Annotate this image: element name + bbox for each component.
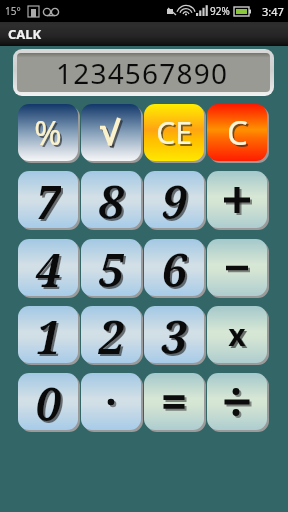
staticText: 9 [161, 171, 187, 228]
button[interactable] [207, 171, 267, 228]
staticText: 6 [161, 239, 187, 296]
staticText: 3 [161, 306, 187, 363]
button[interactable] [207, 373, 267, 430]
staticText: 15° [5, 4, 21, 18]
staticText: 4 [35, 239, 61, 296]
staticText: 0 [35, 373, 61, 430]
button[interactable]: 8 [81, 171, 141, 228]
staticText: 8 [100, 173, 126, 228]
staticText: 0 [37, 375, 63, 430]
staticText: 3:47 [262, 4, 284, 19]
staticText: 6 [163, 241, 189, 296]
staticText: C [229, 112, 250, 157]
button[interactable]: 9 [144, 171, 204, 228]
button[interactable]: 3 [144, 306, 204, 363]
staticText: C [227, 110, 248, 155]
button[interactable]: 6 [144, 239, 204, 296]
staticText: 5 [98, 239, 124, 296]
staticText: 7 [35, 171, 61, 228]
staticText: 1234567890 [56, 54, 229, 92]
staticText: x [230, 316, 248, 357]
button[interactable]: 1 [18, 306, 78, 363]
staticText: 3 [163, 308, 189, 363]
button[interactable]: CE [144, 104, 204, 161]
staticText: 7 [37, 173, 63, 228]
staticText: CE [156, 112, 192, 153]
staticText: 9 [163, 173, 189, 228]
button[interactable]: % [18, 104, 78, 161]
staticText: 1 [37, 308, 63, 363]
staticText: 1 [35, 306, 61, 363]
staticText: % [34, 110, 62, 155]
button[interactable] [144, 373, 204, 430]
button[interactable] [207, 239, 267, 296]
button[interactable]: 5 [81, 239, 141, 296]
button[interactable]: 4 [18, 239, 78, 296]
button[interactable]: 2 [81, 306, 141, 363]
button[interactable]: 0 [18, 373, 78, 430]
staticText: x [228, 314, 246, 355]
staticText: CE [158, 114, 194, 155]
button[interactable]: C [207, 104, 267, 161]
staticText: 4 [37, 241, 63, 296]
staticText: CALK [8, 25, 42, 43]
button[interactable] [81, 373, 141, 430]
staticText: 2 [98, 306, 124, 363]
staticText: 92% [210, 4, 230, 18]
staticText: 8 [98, 171, 124, 228]
staticText: 2 [100, 308, 126, 363]
staticText: 5 [100, 241, 126, 296]
button[interactable] [81, 104, 141, 161]
button[interactable]: 7 [18, 171, 78, 228]
staticText: % [36, 112, 64, 157]
button[interactable]: x [207, 306, 267, 363]
